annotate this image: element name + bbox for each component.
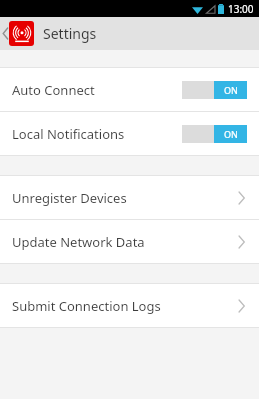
button[interactable]: Toggle on [182, 125, 247, 143]
button[interactable]: Submit Connection Logs [0, 284, 259, 327]
staticText: Unregister Devices [12, 189, 127, 207]
staticText: 13:00 [228, 2, 254, 16]
button[interactable]: Back [0, 17, 9, 50]
staticText: Local Notifications [12, 125, 125, 143]
staticText: Update Network Data [12, 233, 145, 251]
staticText: ON [224, 128, 238, 140]
staticText: Auto Connect [12, 81, 95, 99]
staticText: Submit Connection Logs [12, 297, 161, 315]
button[interactable]: App logo [9, 21, 34, 46]
button[interactable]: Toggle on [182, 81, 247, 99]
button[interactable]: Auto Connect [0, 68, 259, 111]
staticText: Settings [43, 24, 97, 43]
button[interactable]: Update Network Data [0, 220, 259, 263]
button[interactable]: Local Notifications [0, 112, 259, 155]
staticText: ON [224, 84, 238, 96]
button[interactable]: Unregister Devices [0, 176, 259, 219]
